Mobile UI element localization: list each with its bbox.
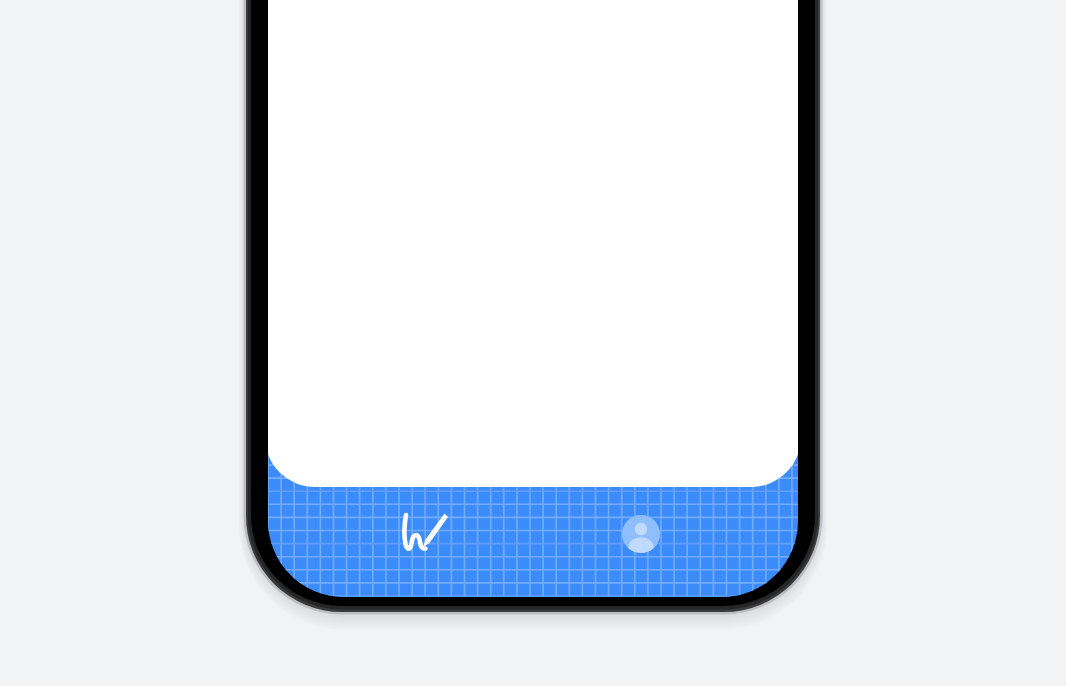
button[interactable]: Sign <box>397 506 455 562</box>
button[interactable]: Account <box>619 512 663 556</box>
